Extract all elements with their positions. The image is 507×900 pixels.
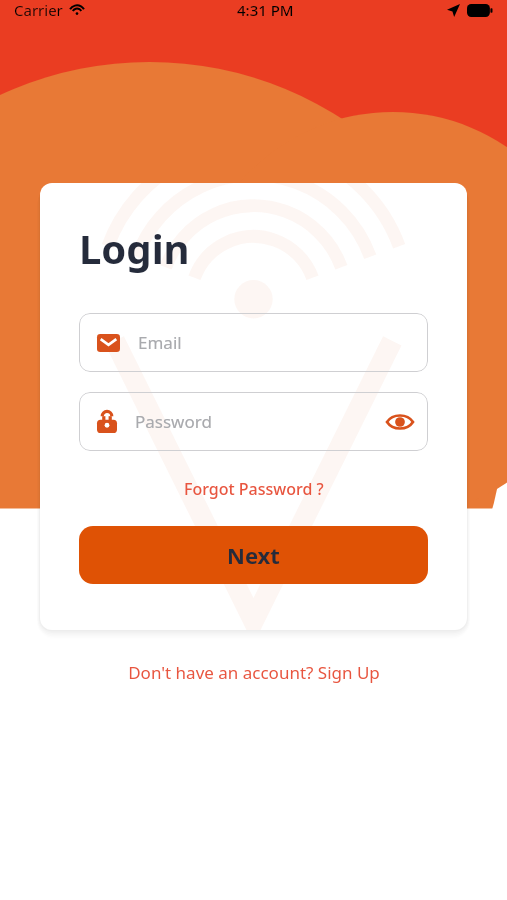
staticText: 4:31 PM [237,0,294,20]
staticText: Email [138,331,182,354]
button[interactable]: Next [79,526,428,584]
staticText: Don't have an account? Sign Up [128,661,380,684]
button[interactable]: Password [79,392,428,451]
staticText: Next [227,540,280,570]
staticText: Password [135,410,212,433]
button[interactable]: Forgot Password ? [40,478,467,500]
staticText: Carrier [14,0,63,20]
button[interactable]: Don't have an account? Sign Up [0,657,507,687]
staticText: Forgot Password ? [184,478,324,500]
button[interactable]: Email [79,313,428,372]
staticText: Login [79,221,190,275]
button[interactable]: Show password [378,400,422,444]
